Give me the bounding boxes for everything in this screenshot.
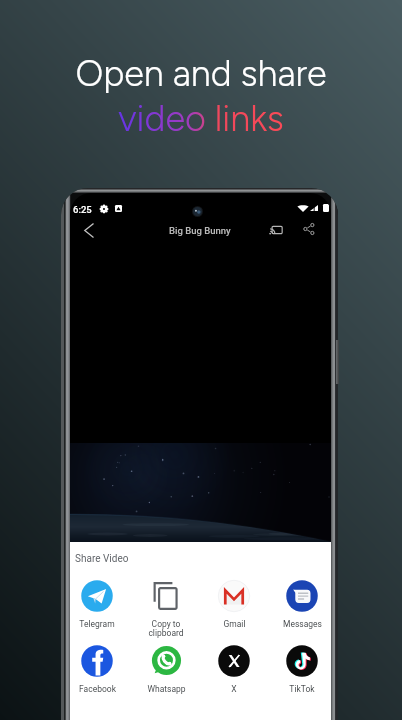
button[interactable]: Messages — [271, 580, 331, 629]
button[interactable]: Whatsapp — [135, 645, 197, 694]
staticText: 6:25 — [73, 204, 92, 215]
staticText: Whatsapp — [147, 684, 186, 694]
staticText: Telegram — [79, 619, 115, 629]
staticText: Gmail — [223, 619, 246, 629]
staticText: Facebook — [79, 684, 116, 694]
staticText: X — [231, 684, 237, 694]
button[interactable]: Cast to device — [263, 216, 289, 244]
staticText: Copy to clipboard — [148, 619, 184, 638]
button[interactable]: Gmail — [203, 580, 265, 629]
staticText: Share Video — [75, 553, 129, 565]
staticText: Messages — [283, 619, 322, 629]
button[interactable]: Back — [75, 216, 101, 244]
staticText: video links — [118, 97, 284, 140]
button[interactable]: TikTok — [271, 645, 331, 694]
staticText: Big Bug Bunny — [169, 225, 231, 236]
button[interactable]: X — [203, 645, 265, 694]
button[interactable]: Share — [296, 215, 322, 243]
button[interactable]: Copy to clipboard — [135, 580, 197, 638]
staticText: TikTok — [289, 684, 315, 694]
staticText: Open and share — [75, 52, 327, 95]
button[interactable]: Telegram — [70, 580, 128, 629]
button[interactable]: Facebook — [70, 645, 128, 694]
